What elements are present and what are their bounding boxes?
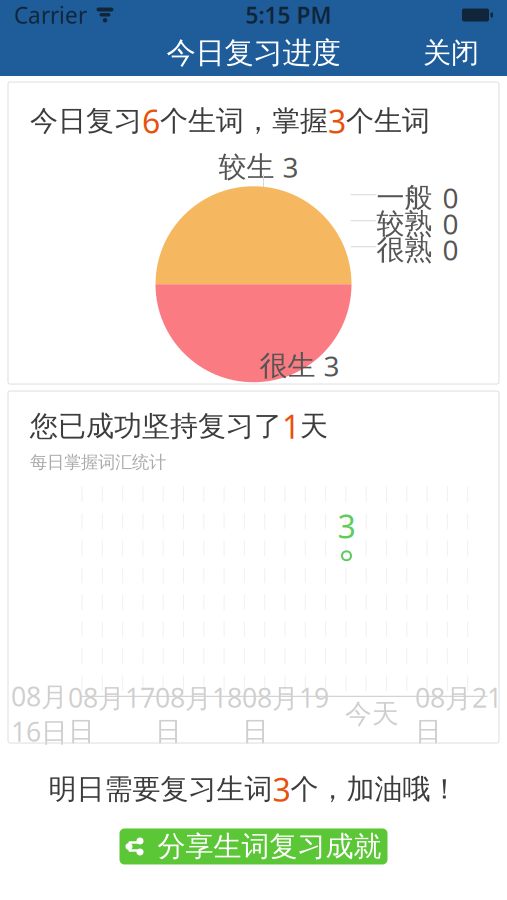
staticText: 很熟 [376, 233, 432, 267]
staticText: 关闭 [423, 36, 479, 70]
staticText: 3 [272, 768, 290, 810]
staticText: 6 [142, 100, 160, 142]
staticText: 3 [328, 100, 346, 142]
staticText: 今日复习 [30, 104, 142, 138]
staticText: 3 [323, 347, 339, 384]
staticText: 很生 [259, 348, 315, 383]
staticText: 分享生词复习成就 [157, 829, 381, 864]
staticText: Carrier [14, 0, 87, 30]
staticText: 个，加油哦！ [290, 772, 458, 806]
staticText: 每日掌握词汇统计 [30, 451, 166, 473]
staticText: 较生 [218, 150, 274, 184]
staticText: 今日复习进度 [166, 35, 340, 71]
button[interactable]: 分享生词复习成就 [119, 828, 387, 864]
button[interactable]: 关闭 [409, 28, 493, 78]
staticText: 0 [442, 205, 458, 242]
staticText: 08月19日 [242, 680, 329, 748]
staticText: 08月21日 [415, 680, 502, 748]
staticText: 一般 [376, 181, 432, 215]
staticText: 个生词 [346, 104, 430, 138]
staticText: 5:15 PM [245, 0, 331, 30]
staticText: 个生词，掌握 [160, 104, 328, 138]
staticText: 较熟 [376, 207, 432, 241]
staticText: 08月16日 [11, 678, 68, 749]
staticText: 3 [337, 505, 355, 547]
staticText: 08月18日 [155, 680, 242, 748]
staticText: 0 [442, 231, 458, 268]
staticText: 3 [282, 148, 298, 185]
staticText: 0 [442, 179, 458, 216]
staticText: 明日需要复习生词 [48, 772, 272, 806]
staticText: 天 [300, 409, 328, 443]
staticText: 今天 [345, 697, 399, 730]
staticText: 1 [282, 405, 300, 447]
staticText: 08月17日 [68, 680, 155, 748]
staticText: 您已成功坚持复习了 [30, 409, 282, 443]
